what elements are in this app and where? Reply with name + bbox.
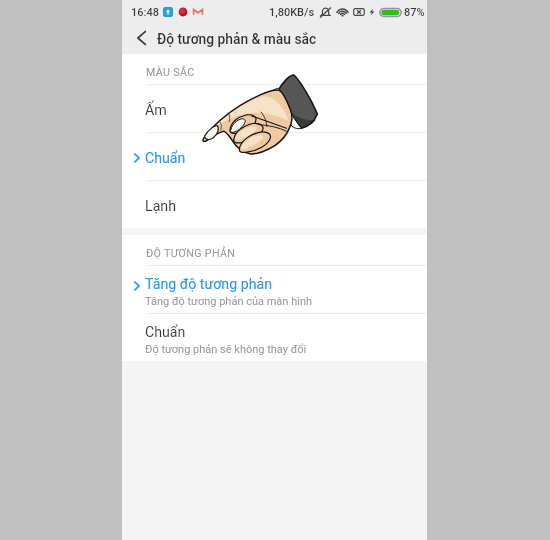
staticText: 1,80KB/s <box>269 6 315 19</box>
button[interactable]: Chuẩn <box>122 314 427 361</box>
button[interactable]: Ấm <box>122 85 427 132</box>
staticText: Độ tương phản & màu sắc <box>157 31 317 47</box>
staticText: Độ tương phản sẽ không thay đổi <box>145 343 307 356</box>
staticText: Lạnh <box>145 198 177 215</box>
staticText: Chuẩn <box>145 150 186 167</box>
staticText: MÀU SẮC <box>146 66 195 79</box>
staticText: Chuẩn <box>145 324 186 341</box>
button[interactable]: Tăng độ tương phản <box>122 266 427 313</box>
staticText: Ấm <box>145 102 167 119</box>
button[interactable]: Chuẩn <box>122 133 427 180</box>
staticText: Tăng độ tương phản <box>145 276 272 293</box>
staticText: ĐỘ TƯƠNG PHẢN <box>146 247 236 260</box>
staticText: 87% <box>404 6 425 19</box>
button[interactable]: Lạnh <box>122 181 427 228</box>
staticText: 16:48 <box>131 6 159 19</box>
staticText: Tăng độ tương phản của màn hình <box>145 295 313 308</box>
button[interactable]: Back <box>122 24 152 54</box>
